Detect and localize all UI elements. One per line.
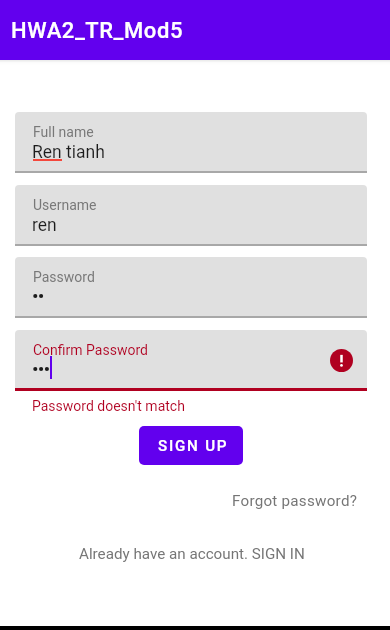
staticText: Password doesn't match <box>32 398 185 414</box>
button[interactable]: Confirm Password <box>15 330 367 391</box>
staticText: Username <box>33 197 97 213</box>
staticText: Forgot password? <box>232 492 358 510</box>
staticText: Ren tianh <box>32 142 105 163</box>
staticText: Full name <box>33 124 94 140</box>
staticText: Confirm Password <box>33 342 148 358</box>
other: Error <box>330 349 353 372</box>
staticText: Password <box>33 269 95 285</box>
staticText: Already have an account. SIGN IN <box>79 545 305 563</box>
button[interactable]: Username <box>15 185 367 246</box>
staticText: SIGN UP <box>158 437 229 455</box>
button[interactable]: Full name <box>15 112 367 173</box>
button[interactable]: SIGN UP <box>139 426 243 465</box>
staticText: ren <box>32 215 57 236</box>
button[interactable]: Forgot password? <box>202 490 358 511</box>
button[interactable]: Already have an account. SIGN IN <box>0 543 390 564</box>
staticText: HWA2_TR_Mod5 <box>11 18 183 44</box>
button[interactable]: Password <box>15 257 367 318</box>
